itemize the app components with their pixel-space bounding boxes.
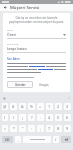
button[interactable]: / (53, 136, 59, 143)
staticText: & (21, 104, 24, 109)
staticText: kargo hatası (7, 46, 27, 51)
button[interactable]: Vazgeç (39, 81, 49, 88)
button[interactable]: Space (23, 136, 51, 143)
staticText: 5 (57, 115, 60, 120)
staticText: 3 (66, 104, 69, 109)
staticText: ( (4, 115, 6, 120)
staticText: 8 (57, 126, 60, 131)
staticText: Görüş ve önerilerinizi bizimle paylaşman… (7, 16, 66, 24)
button[interactable]: : (28, 125, 35, 132)
staticText: ) (13, 115, 15, 120)
staticText: @ (3, 104, 7, 109)
button[interactable]: Gönder (7, 81, 33, 88)
staticText: Konu (7, 28, 13, 31)
button[interactable]: More options (67, 96, 71, 100)
staticText: Gönder (15, 83, 26, 87)
staticText: Müşteri Servisi (10, 5, 40, 11)
staticText: 1 (48, 104, 51, 109)
button[interactable]: ) (10, 114, 17, 121)
button[interactable]: Son Başlık (7, 42, 66, 53)
staticText: Son Başlık (7, 42, 19, 45)
button[interactable]: Konu (7, 28, 66, 39)
button[interactable]: , (15, 136, 21, 143)
button[interactable]: ; (37, 125, 44, 132)
button[interactable]: Back (3, 5, 8, 10)
staticText: Son Adım (7, 57, 20, 61)
staticText: / (55, 137, 57, 142)
button[interactable]: + (37, 103, 44, 110)
button[interactable]: 3 (64, 103, 71, 110)
button[interactable]: - (37, 114, 44, 121)
staticText: 6 (66, 115, 69, 120)
button[interactable]: ¡ (19, 114, 26, 121)
button[interactable]: @ (2, 103, 8, 110)
button[interactable]: 9 (64, 125, 71, 132)
staticText: ABC (5, 138, 10, 142)
staticText: " (22, 126, 24, 131)
button[interactable]: Enter (61, 136, 71, 143)
staticText: Vazgeç (39, 83, 49, 87)
button[interactable]: 6 (64, 114, 71, 121)
staticText: 4 (48, 115, 51, 120)
button[interactable]: ? (28, 114, 35, 121)
staticText: : (31, 126, 32, 131)
button[interactable]: * (10, 125, 17, 132)
button[interactable]: % (28, 103, 35, 110)
staticText: , (18, 137, 19, 142)
button[interactable]: 2 (55, 103, 62, 110)
button[interactable]: 8 (55, 125, 62, 132)
button[interactable]: Emoji (2, 96, 6, 100)
button[interactable]: ( (2, 114, 8, 121)
staticText: 2 (57, 104, 60, 109)
staticText: ? (31, 115, 33, 120)
button[interactable]: # (10, 103, 17, 110)
staticText: - (40, 115, 42, 120)
staticText: = (4, 126, 7, 131)
button[interactable]: 4 (46, 114, 53, 121)
staticText: # (12, 104, 15, 109)
button[interactable]: 7 (46, 125, 53, 132)
button[interactable]: 5 (55, 114, 62, 121)
button[interactable]: " (19, 125, 26, 132)
button[interactable]: ABC (2, 136, 13, 143)
staticText: 9 (66, 126, 69, 131)
staticText: ¡ (22, 115, 23, 120)
staticText: * (13, 126, 15, 131)
button[interactable]: 1 (46, 103, 53, 110)
staticText: % (30, 104, 33, 109)
button[interactable]: = (2, 125, 8, 132)
button[interactable]: & (19, 103, 26, 110)
staticText: Öneri (7, 32, 16, 37)
staticText: ; (40, 126, 41, 131)
staticText: 7 (48, 126, 51, 131)
staticText: + (39, 104, 42, 109)
